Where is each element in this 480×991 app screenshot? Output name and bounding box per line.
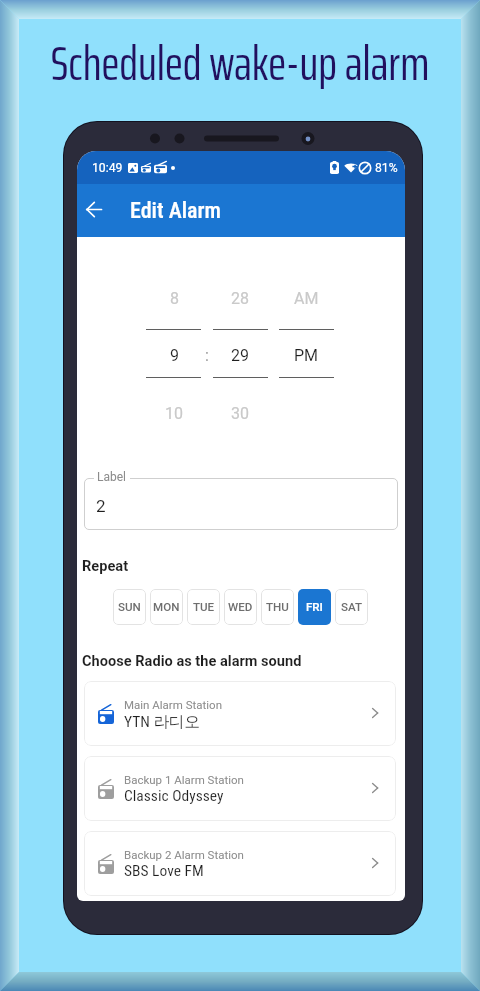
button[interactable]: 2 — [84, 478, 398, 530]
button[interactable]: Backup 1 Alarm Station — [84, 756, 396, 821]
staticText: FRI — [306, 600, 323, 614]
staticText: MON — [153, 600, 180, 614]
staticText: Classic Odyssey — [124, 787, 224, 805]
staticText: Edit Alarm — [130, 198, 221, 224]
staticText: PM — [294, 346, 319, 365]
staticText: 81% — [375, 161, 398, 175]
staticText: WED — [228, 600, 253, 614]
staticText: 28 — [231, 289, 249, 308]
staticText: THU — [266, 600, 289, 614]
staticText: Main Alarm Station — [124, 698, 222, 711]
staticText: TUE — [193, 600, 215, 614]
button[interactable]: TUE — [187, 589, 220, 625]
staticText: : — [205, 346, 209, 365]
staticText: Label — [97, 470, 127, 484]
staticText: Backup 1 Alarm Station — [124, 773, 244, 786]
button[interactable]: SAT — [335, 589, 368, 625]
button[interactable]: SUN — [113, 589, 146, 625]
staticText: SAT — [341, 600, 363, 614]
staticText: Choose Radio as the alarm sound — [82, 652, 302, 669]
staticText: YTN 라디오 — [124, 712, 200, 732]
button[interactable]: WED — [224, 589, 257, 625]
button[interactable]: FRI — [298, 589, 331, 625]
staticText: 29 — [231, 346, 249, 365]
staticText: 10:49 — [92, 161, 123, 175]
staticText: 8 — [170, 289, 179, 308]
staticText: SBS Love FM — [124, 862, 204, 880]
staticText: SUN — [118, 600, 141, 614]
staticText: 30 — [231, 404, 249, 423]
button[interactable]: THU — [261, 589, 294, 625]
staticText: 10 — [165, 404, 183, 423]
staticText: Backup 2 Alarm Station — [124, 848, 244, 861]
staticText: Scheduled wake-up alarm — [0, 25, 480, 101]
button[interactable]: MON — [150, 589, 183, 625]
staticText: Repeat — [82, 557, 129, 574]
button[interactable]: Main Alarm Station — [84, 681, 396, 746]
staticText: 9 — [170, 346, 179, 365]
staticText: AM — [294, 289, 319, 308]
button[interactable]: Backup 2 Alarm Station — [84, 831, 396, 896]
button[interactable]: Back — [77, 185, 118, 233]
staticText: 2 — [96, 496, 106, 516]
